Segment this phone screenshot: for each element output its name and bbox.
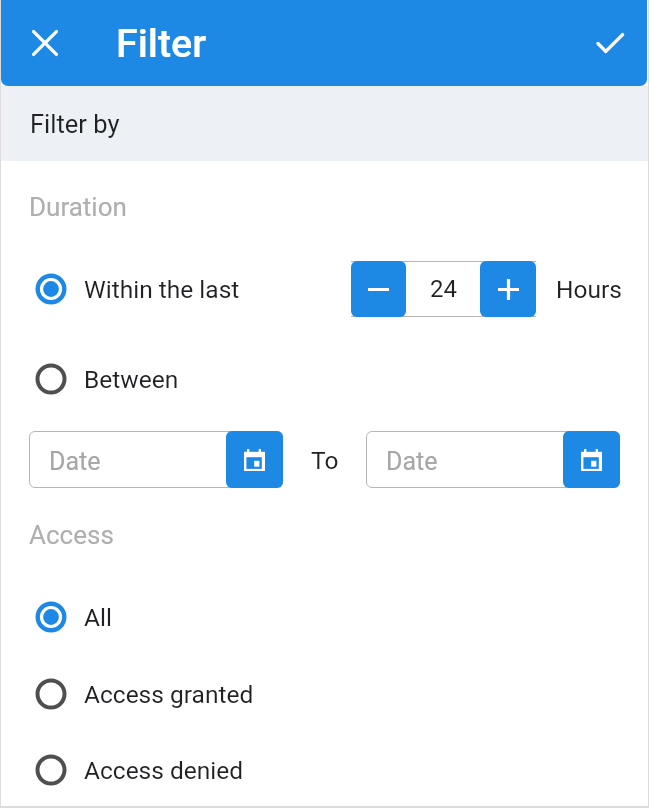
staticText: Date [49,447,101,476]
staticText: Hours [556,275,622,304]
staticText: All [84,603,112,632]
staticText: Between [84,365,179,394]
button[interactable]: Close [19,17,71,69]
staticText: Access denied [84,756,244,785]
staticText: Within the last [84,275,240,304]
button[interactable]: Access denied [35,754,244,786]
button[interactable]: Pick date [29,431,283,488]
button[interactable]: Apply filter [584,17,636,69]
button[interactable]: Access granted [35,678,254,710]
staticText: Duration [29,192,127,222]
staticText: Filter [116,20,207,66]
button[interactable]: Increase duration [480,261,536,317]
button[interactable]: Between [35,363,179,395]
staticText: Filter by [30,109,120,139]
staticText: Access [29,520,114,550]
staticText: To [311,446,339,475]
staticText: 24 [430,275,457,303]
button[interactable]: All [35,601,112,633]
button[interactable]: Pick date [366,431,620,488]
button[interactable]: Decrease duration [351,261,406,317]
button[interactable]: Within the last [35,273,240,305]
staticText: Access granted [84,680,254,709]
staticText: Date [386,447,438,476]
